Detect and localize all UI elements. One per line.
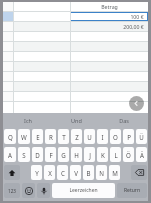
staticText: Ü xyxy=(139,133,144,141)
staticText: L xyxy=(114,151,118,159)
button[interactable]: R xyxy=(45,129,56,144)
button[interactable]: X xyxy=(44,165,55,180)
button[interactable]: Umschalt xyxy=(4,165,20,180)
button[interactable]: H xyxy=(71,147,82,162)
button[interactable]: A xyxy=(4,147,16,162)
button[interactable]: U xyxy=(84,129,95,144)
button[interactable]: 200,00 € xyxy=(3,22,148,31)
button[interactable]: E xyxy=(32,129,43,144)
staticText: C xyxy=(61,169,65,177)
button[interactable]: Das xyxy=(100,113,148,127)
staticText: R xyxy=(49,133,53,141)
staticText: G xyxy=(61,151,66,159)
button[interactable]: Ü xyxy=(136,129,147,144)
staticText: 100 € xyxy=(130,13,144,20)
button[interactable]: F xyxy=(45,147,56,162)
button[interactable] xyxy=(3,42,148,51)
staticText: Das xyxy=(119,117,129,124)
button[interactable] xyxy=(3,52,148,61)
button[interactable]: Leerzeichen xyxy=(52,183,115,198)
staticText: Z xyxy=(75,133,79,141)
button[interactable]: Diktat xyxy=(37,183,50,198)
button[interactable]: W xyxy=(18,129,30,144)
button[interactable]: S xyxy=(18,147,30,162)
button[interactable] xyxy=(3,72,148,81)
staticText: W xyxy=(21,133,27,141)
button[interactable]: G xyxy=(58,147,69,162)
button[interactable] xyxy=(3,62,148,71)
button[interactable]: Ich xyxy=(3,113,52,127)
button[interactable]: N xyxy=(96,165,107,180)
button[interactable]: Ö xyxy=(123,147,134,162)
button[interactable] xyxy=(3,82,148,91)
staticText: H xyxy=(74,151,79,159)
button[interactable]: C xyxy=(57,165,68,180)
staticText: Und xyxy=(71,117,82,124)
button[interactable]: L xyxy=(110,147,121,162)
staticText: S xyxy=(22,151,26,159)
staticText: O xyxy=(113,133,118,141)
button[interactable] xyxy=(3,92,148,101)
staticText: V xyxy=(74,169,78,177)
button[interactable]: K xyxy=(97,147,108,162)
button[interactable]: Q xyxy=(4,129,16,144)
staticText: E xyxy=(36,133,40,141)
button[interactable]: I xyxy=(97,129,108,144)
staticText: U xyxy=(87,133,92,141)
button[interactable]: M xyxy=(109,165,120,180)
staticText: K xyxy=(101,151,105,159)
staticText: Ä xyxy=(140,151,144,159)
button[interactable]: Z xyxy=(71,129,82,144)
button[interactable]: D xyxy=(32,147,43,162)
staticText: B xyxy=(86,169,91,177)
button[interactable]: 100 € xyxy=(70,12,144,21)
staticText: I xyxy=(101,133,104,141)
staticText: Ö xyxy=(126,151,131,159)
staticText: Leerzeichen xyxy=(69,187,98,194)
button[interactable]: Und xyxy=(52,113,100,127)
button[interactable]: Ä xyxy=(136,147,147,162)
button[interactable]: O xyxy=(110,129,121,144)
button[interactable]: Löschen xyxy=(131,165,147,180)
button[interactable]: Y xyxy=(31,165,42,180)
button[interactable]: Zurück xyxy=(129,96,144,111)
staticText: T xyxy=(62,133,66,141)
staticText: D xyxy=(35,151,40,159)
staticText: M xyxy=(112,169,118,177)
staticText: 123 xyxy=(8,188,16,194)
staticText: J xyxy=(89,151,91,159)
button[interactable] xyxy=(3,32,148,41)
button[interactable]: 123 xyxy=(4,183,20,198)
button[interactable]: Return xyxy=(117,183,147,198)
staticText: Betrag xyxy=(101,3,118,10)
staticText: Y xyxy=(35,169,39,177)
staticText: F xyxy=(49,151,53,159)
button[interactable]: T xyxy=(58,129,69,144)
button[interactable]: B xyxy=(83,165,94,180)
staticText: Q xyxy=(8,133,13,141)
staticText: 200,00 € xyxy=(123,23,144,30)
staticText: P xyxy=(127,133,131,141)
button[interactable]: Emoji xyxy=(22,183,35,198)
button[interactable]: J xyxy=(84,147,95,162)
staticText: Ich xyxy=(24,117,32,124)
staticText: Return xyxy=(124,187,140,194)
button[interactable]: P xyxy=(123,129,134,144)
staticText: A xyxy=(8,151,12,159)
button[interactable]: V xyxy=(70,165,81,180)
staticText: X xyxy=(48,169,52,177)
staticText: N xyxy=(99,169,104,177)
button[interactable]: 100 € xyxy=(3,12,148,21)
